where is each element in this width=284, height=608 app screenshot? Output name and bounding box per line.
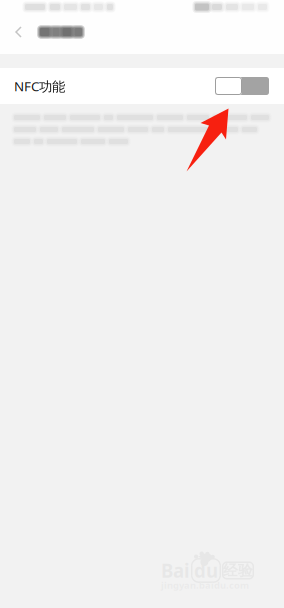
button[interactable]: Back <box>0 21 40 43</box>
staticText: Bai <box>161 558 190 583</box>
staticText: 经验 <box>223 561 253 579</box>
staticText: jingyan.baidu.com <box>161 579 249 591</box>
button[interactable]: NFC功能 <box>0 68 284 104</box>
staticText: du <box>194 558 218 583</box>
staticText: NFC功能 <box>14 77 65 95</box>
